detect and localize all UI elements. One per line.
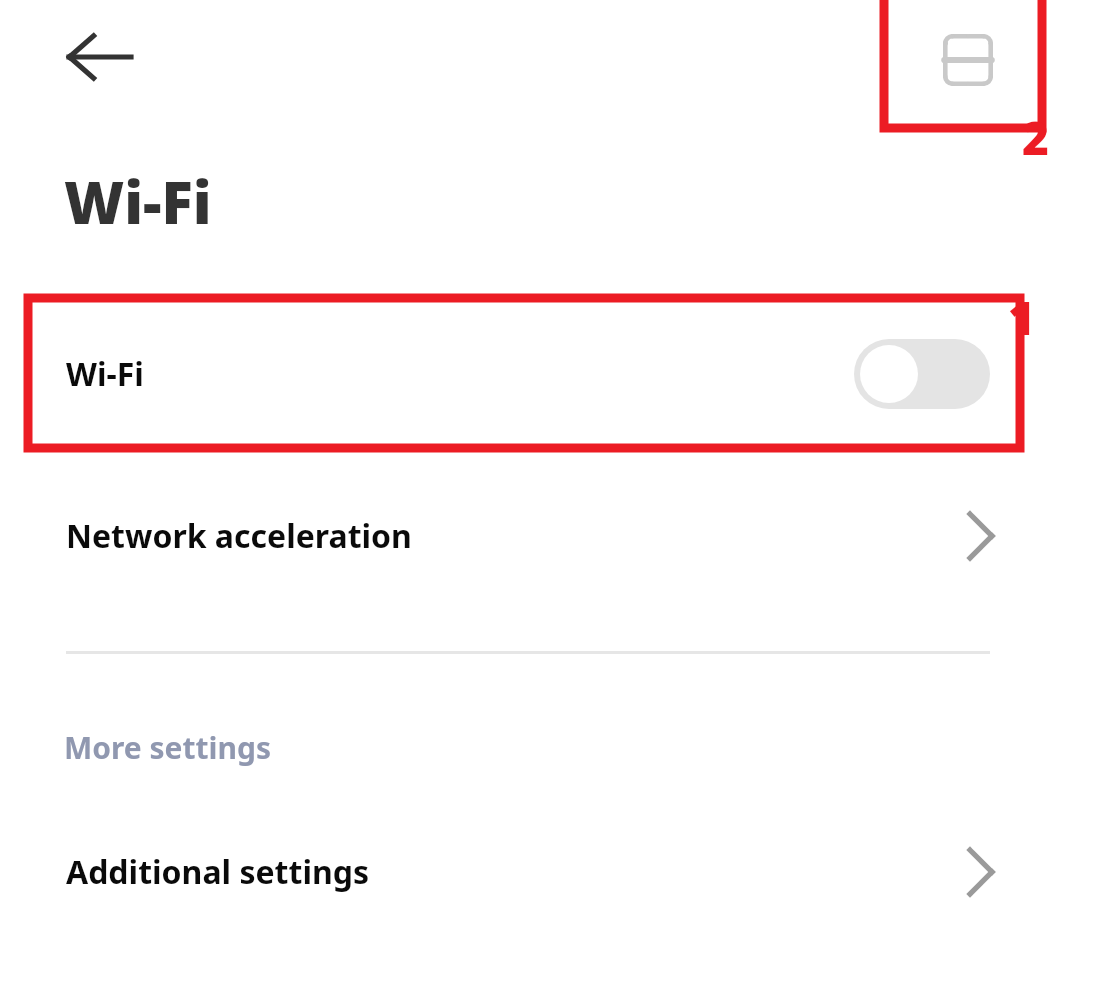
- button[interactable]: Scan QR code: [919, 11, 1017, 109]
- button[interactable]: Wi-Fi toggle, off: [854, 339, 990, 409]
- staticText: 2: [1022, 106, 1049, 169]
- button[interactable]: Network acceleration: [0, 476, 1094, 596]
- button[interactable]: Wi-Fi: [0, 310, 1094, 438]
- staticText: More settings: [64, 727, 272, 768]
- button[interactable]: Back: [54, 12, 146, 102]
- staticText: Wi-Fi: [66, 352, 144, 396]
- staticText: 1: [1008, 286, 1035, 349]
- button[interactable]: Additional settings: [0, 812, 1094, 932]
- staticText: Network acceleration: [66, 514, 412, 558]
- staticText: Wi-Fi: [64, 162, 212, 241]
- staticText: Additional settings: [66, 850, 370, 894]
